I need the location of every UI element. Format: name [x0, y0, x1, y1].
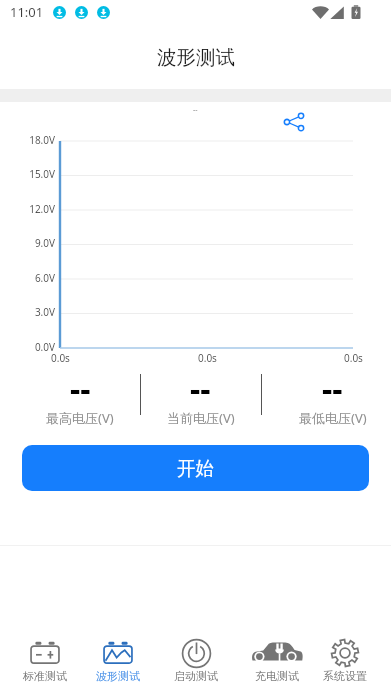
- staticText: 标准测试: [23, 669, 67, 683]
- staticText: 充电测试: [255, 669, 299, 683]
- staticText: 18.0V: [29, 133, 55, 147]
- staticText: 最低电压(V): [299, 409, 367, 427]
- staticText: 15.0V: [29, 167, 55, 181]
- staticText: --: [190, 367, 211, 411]
- staticText: 启动测试: [174, 669, 218, 683]
- staticText: 0.0s: [51, 351, 70, 365]
- button[interactable]: 波形测试: [83, 639, 153, 695]
- staticText: 0.0s: [198, 351, 217, 365]
- staticText: 9.0V: [34, 236, 55, 250]
- staticText: --: [70, 367, 91, 411]
- staticText: 波形测试: [157, 45, 235, 70]
- staticText: 0.0V: [34, 340, 55, 354]
- staticText: --: [322, 367, 343, 411]
- staticText: 开始: [177, 457, 214, 480]
- staticText: 最高电压(V): [46, 409, 114, 427]
- staticText: 3.0V: [34, 305, 55, 319]
- staticText: --: [193, 105, 198, 115]
- button[interactable]: 开始: [22, 445, 369, 491]
- staticText: 11:01: [10, 3, 44, 21]
- staticText: 当前电压(V): [167, 409, 235, 427]
- staticText: 12.0V: [29, 202, 55, 216]
- staticText: 系统设置: [323, 669, 367, 683]
- staticText: 0.0s: [344, 351, 363, 365]
- button[interactable]: 系统设置: [310, 639, 380, 695]
- button[interactable]: 启动测试: [161, 639, 231, 695]
- button[interactable]: 充电测试: [242, 639, 312, 695]
- button[interactable]: 标准测试: [10, 639, 80, 695]
- staticText: 波形测试: [96, 669, 140, 683]
- button[interactable]: Share: [281, 109, 307, 135]
- staticText: 6.0V: [34, 271, 55, 285]
